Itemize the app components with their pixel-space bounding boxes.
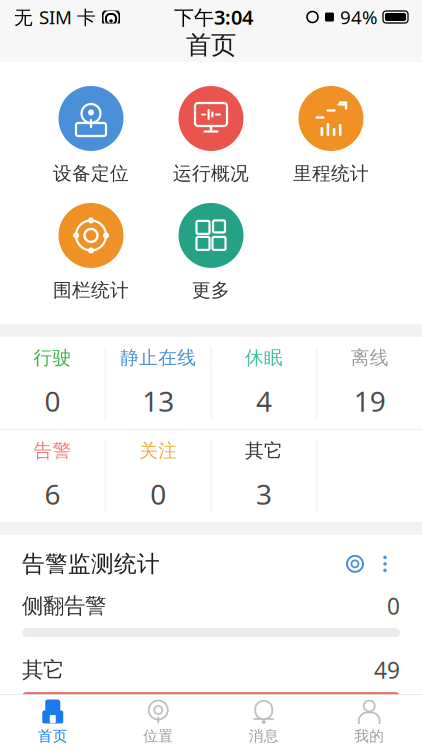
staticText: 其它 xyxy=(245,439,283,462)
staticText: 位置 xyxy=(143,727,173,745)
button[interactable]: 消息 xyxy=(211,695,316,749)
button[interactable]: 设备定位 xyxy=(31,86,151,185)
staticText: 我的 xyxy=(354,727,384,745)
button[interactable]: 查看更多≫ xyxy=(0,701,422,747)
staticText: 94% xyxy=(335,5,383,29)
staticText: 运行概况 xyxy=(173,162,249,185)
staticText: 19 xyxy=(354,382,386,419)
button[interactable]: 更多选项 xyxy=(370,549,400,579)
staticText: 关注 xyxy=(139,439,177,462)
button[interactable]: 静止在线 xyxy=(106,337,211,429)
button[interactable]: 设置 xyxy=(340,549,370,579)
staticText xyxy=(318,2,324,32)
button[interactable]: 离线 xyxy=(317,337,422,429)
staticText: 其它 xyxy=(22,657,64,683)
staticText: 消息 xyxy=(249,727,279,745)
staticText: 围栏统计 xyxy=(53,279,129,302)
staticText: 6 xyxy=(44,475,60,512)
button[interactable]: 关注 xyxy=(106,430,211,522)
button[interactable]: 里程统计 xyxy=(271,86,391,185)
button[interactable]: 告警 xyxy=(0,430,105,522)
button[interactable]: 运行概况 xyxy=(151,86,271,185)
staticText: 行驶 xyxy=(33,346,71,369)
staticText: 0 xyxy=(44,382,60,419)
button[interactable]: 休眠 xyxy=(211,337,316,429)
staticText: 告警 xyxy=(33,439,71,462)
button[interactable]: 围栏统计 xyxy=(31,203,151,302)
staticText: 无 SIM 卡 xyxy=(14,5,96,29)
staticText: 更多 xyxy=(192,279,230,302)
staticText: 0 xyxy=(150,475,166,512)
staticText: 3 xyxy=(256,475,272,512)
staticText: 13 xyxy=(142,382,174,419)
staticText: 休眠 xyxy=(245,346,283,369)
staticText: 4 xyxy=(256,382,272,419)
staticText: 静止在线 xyxy=(120,346,196,369)
staticText: 侧翻告警 xyxy=(22,593,106,619)
button[interactable]: 我的 xyxy=(316,695,422,749)
button[interactable]: 更多 xyxy=(151,203,271,302)
staticText: 49 xyxy=(374,655,400,685)
staticText: 里程统计 xyxy=(293,162,369,185)
staticText: 离线 xyxy=(351,346,389,369)
staticText: 首页 xyxy=(186,29,236,60)
staticText: 首页 xyxy=(38,727,68,745)
button[interactable]: 其它 xyxy=(211,430,316,522)
staticText: 设备定位 xyxy=(53,162,129,185)
staticText: 告警监测统计 xyxy=(22,550,160,578)
staticText: 查看更多≫ xyxy=(160,712,261,736)
staticText: 0 xyxy=(387,591,400,621)
staticText: 下午3:04 xyxy=(174,4,253,30)
button[interactable]: 行驶 xyxy=(0,337,105,429)
button[interactable]: 首页 xyxy=(0,695,105,749)
button[interactable]: 位置 xyxy=(105,695,211,749)
